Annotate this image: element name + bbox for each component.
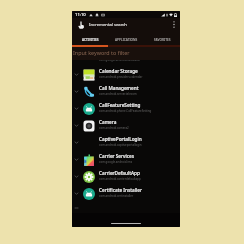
staticText: com.android.camera2 xyxy=(99,126,129,130)
staticText: com.android.providers.calendar xyxy=(99,75,143,79)
button[interactable]: CarrierDefaultApp xyxy=(72,167,180,184)
button[interactable]: FAVORITES xyxy=(144,31,180,45)
button[interactable]: Camera xyxy=(72,116,180,133)
button[interactable]: Call Management xyxy=(72,82,180,99)
button[interactable]: Home xyxy=(111,223,141,224)
staticText: Calendar Storage xyxy=(99,68,138,74)
button[interactable]: APPLICATIONS xyxy=(108,31,144,45)
button[interactable]: ACTIVITIES xyxy=(72,31,108,45)
staticText: com.android.phone.CallFeatureSetting xyxy=(99,109,152,113)
staticText: CarrierDefaultApp xyxy=(99,170,140,176)
staticText: com.android.certinstaller xyxy=(99,194,134,198)
staticText: com.android.carrierdefaultapp xyxy=(99,177,141,181)
staticText: ACTIVITIES xyxy=(82,38,99,42)
button[interactable]: Certificate Installer xyxy=(72,184,180,201)
button[interactable]: Calculator xyxy=(72,60,180,65)
staticText: Carrier Services xyxy=(99,153,135,159)
button[interactable]: CallFeatureSetting xyxy=(72,99,180,116)
staticText: Certificate Installer xyxy=(99,187,142,193)
staticText: CallFeatureSetting xyxy=(99,102,141,108)
staticText: APPLICATIONS xyxy=(115,38,138,42)
staticText: com.google.android.calculator xyxy=(99,60,141,62)
staticText: FAVORITES xyxy=(154,38,171,42)
staticText: Call Management xyxy=(99,85,139,91)
staticText: Input keyword to filter xyxy=(73,49,130,56)
staticText: com.google.android.ims xyxy=(99,160,133,164)
button[interactable]: Calendar Storage xyxy=(72,65,180,82)
button[interactable]: CaptivePortalLogin xyxy=(72,133,180,150)
staticText: com.android.server.telecom xyxy=(99,92,137,96)
staticText: Incremental search xyxy=(89,22,127,28)
staticText: Camera xyxy=(99,119,117,125)
staticText: 11:10 xyxy=(75,12,86,18)
button[interactable]: Input keyword to filter xyxy=(72,47,180,60)
staticText: com.android.captiveportallogin xyxy=(99,143,142,147)
button[interactable]: More options xyxy=(170,18,178,31)
button[interactable]: App icon xyxy=(76,20,85,29)
button[interactable]: Carrier Services xyxy=(72,150,180,167)
staticText: CaptivePortalLogin xyxy=(99,136,142,142)
